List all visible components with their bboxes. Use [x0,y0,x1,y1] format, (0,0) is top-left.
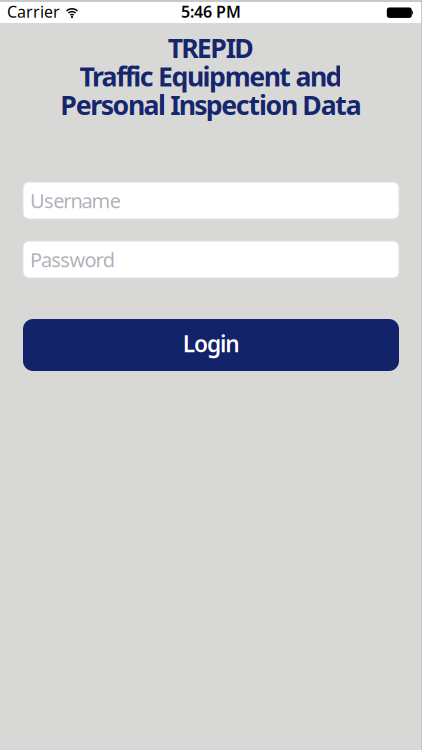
staticText: Password [30,246,115,273]
staticText: 5:46 PM [181,1,241,22]
staticText: Login [183,328,239,358]
staticText: Traffic Equipment and [79,58,342,94]
button[interactable]: Username [23,182,399,219]
button[interactable]: Password [23,241,399,278]
staticText: Carrier [7,1,60,22]
button[interactable]: Login [23,319,399,371]
staticText: TREPID [168,30,254,65]
staticText: Personal Inspection Data [60,87,362,122]
staticText: Username [30,187,121,214]
